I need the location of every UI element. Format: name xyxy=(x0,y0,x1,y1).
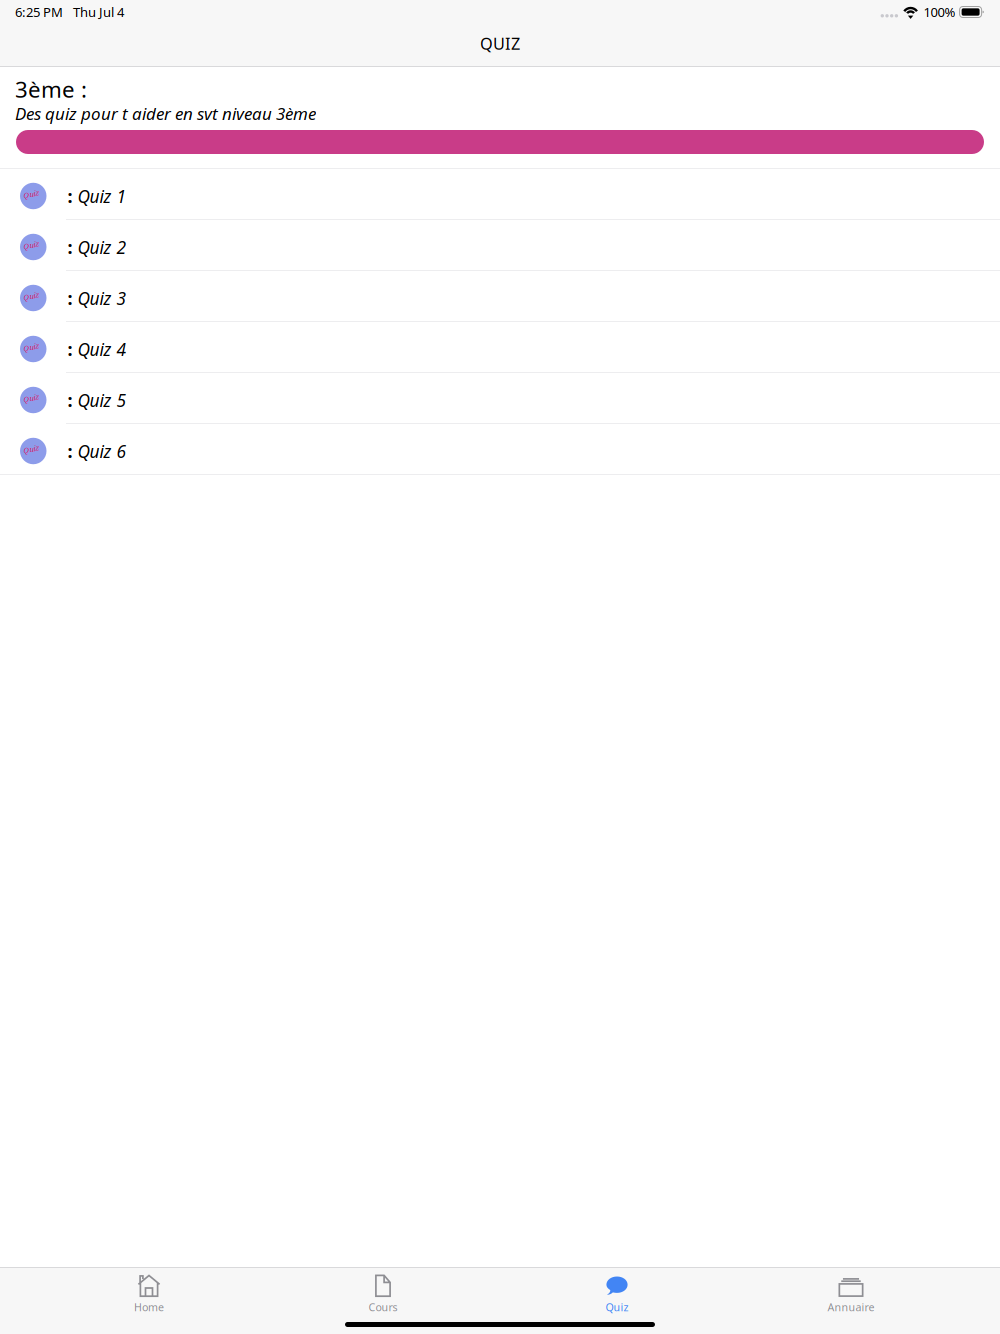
staticText: u xyxy=(29,393,33,403)
staticText: z xyxy=(35,289,39,300)
button[interactable]: Q xyxy=(0,373,1000,424)
staticText: u xyxy=(29,342,33,352)
button[interactable]: Q xyxy=(0,322,1000,373)
staticText: Annuaire xyxy=(827,1300,874,1314)
staticText: Quiz xyxy=(605,1300,628,1314)
button[interactable]: Q xyxy=(0,271,1000,322)
staticText: Q xyxy=(23,292,29,302)
staticText: Q xyxy=(23,190,29,200)
staticText: z xyxy=(35,340,39,351)
staticText: Cours xyxy=(368,1300,397,1314)
staticText: : Quiz 1 xyxy=(67,184,126,208)
staticText: Q xyxy=(23,394,29,404)
button[interactable]: Home xyxy=(32,1268,266,1318)
staticText: 6:25 PM xyxy=(15,3,63,21)
staticText: u xyxy=(29,240,33,250)
staticText: Des quiz pour t aider en svt niveau 3ème xyxy=(15,102,316,125)
staticText: u xyxy=(29,444,33,454)
button[interactable]: Quiz xyxy=(500,1268,734,1318)
staticText: u xyxy=(29,291,33,301)
staticText: Q xyxy=(23,445,29,455)
staticText: : Quiz 6 xyxy=(67,439,126,463)
staticText: Thu Jul 4 xyxy=(73,3,124,21)
staticText: z xyxy=(35,391,39,402)
staticText: Home xyxy=(134,1300,164,1314)
staticText: Q xyxy=(23,241,29,251)
staticText: : Quiz 4 xyxy=(67,337,126,361)
staticText: z xyxy=(35,442,39,453)
button[interactable]: Q xyxy=(0,424,1000,475)
staticText: u xyxy=(29,189,33,199)
staticText: i xyxy=(33,188,35,198)
staticText: i xyxy=(33,290,35,300)
staticText: : Quiz 3 xyxy=(67,286,126,310)
staticText: i xyxy=(33,443,35,453)
button[interactable]: Cours xyxy=(266,1268,500,1318)
staticText: z xyxy=(35,187,39,198)
staticText: : Quiz 2 xyxy=(67,235,126,259)
button[interactable]: Annuaire xyxy=(734,1268,968,1318)
button[interactable]: Q xyxy=(0,220,1000,271)
staticText: i xyxy=(33,239,35,249)
staticText: i xyxy=(33,341,35,351)
staticText: 100% xyxy=(924,3,956,21)
staticText: Q xyxy=(23,343,29,353)
staticText: QUIZ xyxy=(480,32,520,55)
staticText: i xyxy=(33,392,35,402)
staticText: z xyxy=(35,238,39,249)
staticText: : Quiz 5 xyxy=(67,388,126,412)
staticText: 3ème : xyxy=(15,74,87,104)
button[interactable]: Q xyxy=(0,169,1000,220)
